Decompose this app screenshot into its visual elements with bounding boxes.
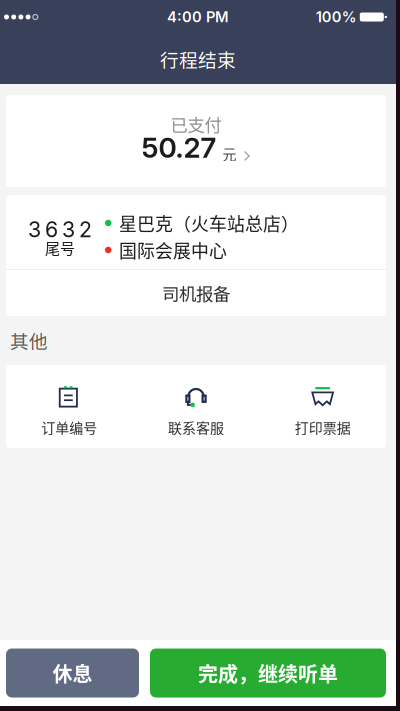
staticText: 完成，继续听单 [198, 658, 338, 687]
staticText: 司机报备 [162, 280, 230, 306]
button[interactable]: 休息 [6, 648, 139, 697]
staticText: 星巴克（火车站总店） [119, 210, 299, 236]
staticText: 元 [222, 143, 236, 163]
button[interactable]: 司机报备 [6, 270, 386, 316]
staticText: 国际会展中心 [119, 237, 227, 263]
staticText: 50.27 [141, 131, 216, 164]
button[interactable]: 已支付 [6, 95, 386, 187]
staticText: 休息 [52, 658, 92, 687]
staticText: 已支付 [170, 111, 221, 137]
staticText: 3 6 3 2 [28, 217, 92, 242]
staticText: 尾号 [45, 237, 75, 258]
staticText: 打印票据 [295, 417, 351, 437]
button[interactable]: 打印票据 [259, 365, 386, 448]
button[interactable]: 完成，继续听单 [150, 648, 386, 697]
staticText: 其他 [10, 327, 48, 354]
staticText: 4:00 PM [167, 8, 229, 26]
staticText: 行程结束 [160, 45, 236, 72]
button[interactable]: 联系客服 [133, 365, 259, 448]
staticText: 订单编号 [41, 417, 97, 437]
staticText: 100% [316, 8, 357, 26]
button[interactable]: 订单编号 [6, 365, 133, 448]
staticText: 联系客服 [168, 417, 224, 437]
